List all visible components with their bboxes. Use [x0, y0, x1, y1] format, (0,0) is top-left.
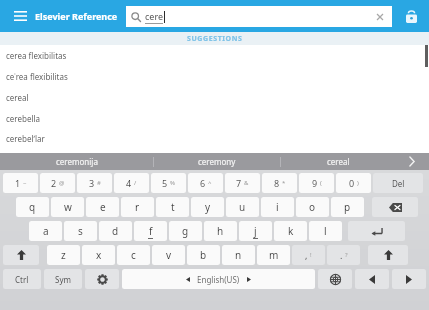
- button[interactable]: 3: [77, 173, 112, 193]
- button[interactable]: d: [99, 221, 132, 241]
- staticText: /: [134, 179, 137, 187]
- staticText: cerebella: [6, 113, 41, 124]
- button[interactable]: Backspace: [372, 197, 418, 217]
- button[interactable]: 7: [225, 173, 260, 193]
- button[interactable]: 1: [3, 173, 38, 193]
- button[interactable]: c: [117, 245, 150, 265]
- staticText: cerebelʼlar: [6, 133, 45, 144]
- staticText: #: [97, 179, 101, 187]
- button[interactable]: Shift: [3, 245, 39, 265]
- button[interactable]: Ctrl: [3, 269, 41, 289]
- button[interactable]: 2: [40, 173, 75, 193]
- staticText: Sym: [55, 274, 71, 285]
- staticText: m: [269, 248, 279, 262]
- staticText: Ctrl: [15, 274, 29, 285]
- staticText: 9: [312, 177, 318, 189]
- staticText: t: [171, 200, 175, 214]
- staticText: b: [200, 248, 207, 262]
- button[interactable]: 8: [262, 173, 297, 193]
- staticText: ceʾrea flexibilitas: [6, 71, 68, 82]
- button[interactable]: cerebelʼlar: [0, 129, 429, 148]
- staticText: @: [59, 179, 65, 187]
- button[interactable]: f: [134, 221, 167, 241]
- staticText: k: [288, 224, 294, 238]
- staticText: cereal: [327, 156, 350, 167]
- staticText: v: [166, 248, 172, 262]
- staticText: i: [276, 200, 279, 214]
- button[interactable]: s: [64, 221, 97, 241]
- staticText: ^: [208, 179, 212, 187]
- button[interactable]: English(US): [122, 269, 315, 289]
- button[interactable]: ceʾrea flexibilitas: [0, 66, 429, 87]
- button[interactable]: i: [261, 197, 294, 217]
- button[interactable]: e: [86, 197, 119, 217]
- button[interactable]: cereal: [281, 153, 395, 170]
- staticText: *: [282, 179, 286, 187]
- button[interactable]: Delete: [373, 173, 423, 193]
- staticText: c: [131, 248, 136, 262]
- button[interactable]: 0: [336, 173, 371, 193]
- button[interactable]: h: [204, 221, 237, 241]
- button[interactable]: 9: [299, 173, 334, 193]
- staticText: cere: [145, 10, 164, 22]
- button[interactable]: cerebella: [0, 108, 429, 129]
- button[interactable]: Enter: [348, 221, 405, 241]
- button[interactable]: q: [16, 197, 49, 217]
- button[interactable]: v: [152, 245, 185, 265]
- button[interactable]: n: [222, 245, 255, 265]
- staticText: &: [244, 179, 249, 187]
- button[interactable]: j: [239, 221, 272, 241]
- button[interactable]: z: [47, 245, 80, 265]
- staticText: cereal: [6, 92, 29, 103]
- button[interactable]: Secure content: [400, 5, 422, 27]
- button[interactable]: .: [327, 245, 360, 265]
- staticText: 3: [89, 177, 95, 189]
- button[interactable]: y: [191, 197, 224, 217]
- button[interactable]: Move right: [392, 269, 426, 289]
- button[interactable]: x: [82, 245, 115, 265]
- button[interactable]: g: [169, 221, 202, 241]
- staticText: z: [61, 248, 66, 262]
- button[interactable]: 5: [151, 173, 186, 193]
- button[interactable]: 6: [188, 173, 223, 193]
- staticText: j: [254, 224, 257, 238]
- button[interactable]: m: [257, 245, 290, 265]
- staticText: 1: [15, 177, 21, 189]
- button[interactable]: 4: [114, 173, 149, 193]
- staticText: !: [310, 251, 312, 259]
- staticText: w: [64, 200, 72, 214]
- button[interactable]: l: [309, 221, 342, 241]
- button[interactable]: a: [29, 221, 62, 241]
- button[interactable]: cereal: [0, 87, 429, 108]
- staticText: ceremonija: [56, 156, 98, 167]
- button[interactable]: ceremony: [154, 153, 280, 170]
- button[interactable]: r: [121, 197, 154, 217]
- button[interactable]: Move left: [355, 269, 389, 289]
- button[interactable]: b: [187, 245, 220, 265]
- button[interactable]: t: [156, 197, 189, 217]
- button[interactable]: o: [296, 197, 329, 217]
- button[interactable]: Open navigation menu: [7, 3, 33, 29]
- staticText: %: [170, 179, 175, 187]
- staticText: q: [29, 200, 36, 214]
- button[interactable]: cere: [126, 6, 392, 27]
- button[interactable]: cerea flexibilitas: [0, 45, 429, 66]
- button[interactable]: u: [226, 197, 259, 217]
- staticText: ?: [345, 251, 348, 259]
- staticText: h: [217, 224, 224, 238]
- button[interactable]: ceremonija: [0, 153, 153, 170]
- staticText: g: [182, 224, 189, 238]
- button[interactable]: Sym: [44, 269, 82, 289]
- button[interactable]: Shift: [368, 245, 408, 265]
- button[interactable]: p: [331, 197, 364, 217]
- staticText: ): [357, 179, 359, 187]
- button[interactable]: ,: [292, 245, 325, 265]
- button[interactable]: w: [51, 197, 84, 217]
- button[interactable]: Clear search: [373, 10, 387, 24]
- button[interactable]: Keyboard settings: [85, 269, 119, 289]
- staticText: 0: [349, 177, 355, 189]
- staticText: Elsevier Reference: [35, 10, 118, 22]
- button[interactable]: More suggestions: [395, 153, 429, 170]
- button[interactable]: Change language: [318, 269, 352, 289]
- button[interactable]: k: [274, 221, 307, 241]
